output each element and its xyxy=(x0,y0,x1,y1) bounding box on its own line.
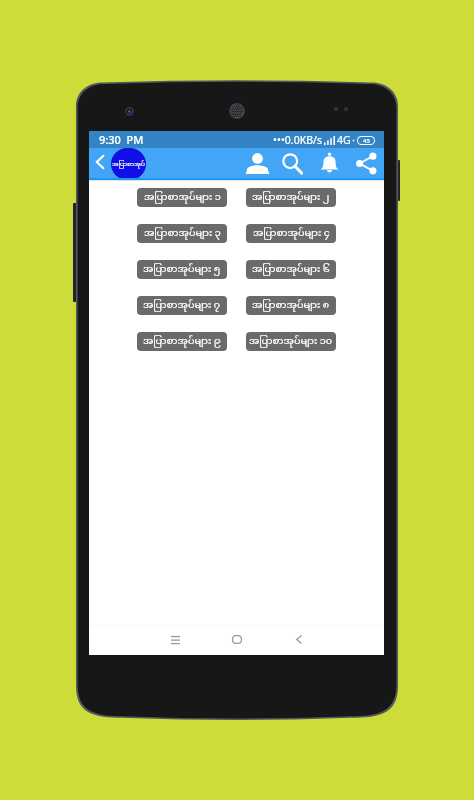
staticText: အပြာစာအုပ်များ ၃ xyxy=(144,227,221,240)
button[interactable]: Home xyxy=(222,624,252,655)
button[interactable]: Account xyxy=(243,149,271,177)
staticText: အပြာစာအုပ်များ ၈ xyxy=(252,299,330,312)
staticText: အပြာစာအုပ်များ ၉ xyxy=(143,335,221,348)
button[interactable]: Search xyxy=(278,149,306,177)
button[interactable]: အပြာစာအုပ်များ ၈ xyxy=(246,296,336,315)
staticText: 45 xyxy=(363,137,370,144)
staticText: 9:30 PM xyxy=(99,132,144,147)
button[interactable]: အပြာစာအုပ် xyxy=(111,148,146,180)
button[interactable]: အပြာစာအုပ်များ ၇ xyxy=(137,296,227,315)
button[interactable]: အပြာစာအုပ်များ ၅ xyxy=(137,260,227,279)
button[interactable]: Share xyxy=(352,149,380,177)
staticText: အပြာစာအုပ်များ ၁၀ xyxy=(249,335,333,348)
button[interactable]: အပြာစာအုပ်များ ၄ xyxy=(246,224,336,243)
button[interactable]: Notifications xyxy=(315,149,343,177)
button[interactable]: အပြာစာအုပ်များ ၃ xyxy=(137,224,227,243)
button[interactable]: အပြာစာအုပ်များ ၉ xyxy=(137,332,227,351)
staticText: အပြာစာအုပ်များ ၆ xyxy=(252,263,330,276)
button[interactable]: အပြာစာအုပ်များ ၁ xyxy=(137,188,227,207)
staticText: 4G xyxy=(337,133,351,147)
staticText: အပြာစာအုပ်များ ၂ xyxy=(252,191,330,204)
button[interactable]: အပြာစာအုပ်များ ၂ xyxy=(246,188,336,207)
button[interactable]: Recents xyxy=(160,624,190,655)
staticText: အပြာစာအုပ်များ ၇ xyxy=(143,299,221,312)
button[interactable]: Back xyxy=(90,152,109,171)
staticText: အပြာစာအုပ် xyxy=(112,160,145,168)
button[interactable]: Back xyxy=(284,624,314,655)
staticText: အပြာစာအုပ်များ ၅ xyxy=(143,263,221,276)
staticText: အပြာစာအုပ်များ ၄ xyxy=(253,227,330,240)
button[interactable]: အပြာစာအုပ်များ ၆ xyxy=(246,260,336,279)
staticText: •••0.0KB/s xyxy=(273,133,322,147)
button[interactable]: အပြာစာအုပ်များ ၁၀ xyxy=(246,332,336,351)
staticText: အပြာစာအုပ်များ ၁ xyxy=(144,191,221,204)
